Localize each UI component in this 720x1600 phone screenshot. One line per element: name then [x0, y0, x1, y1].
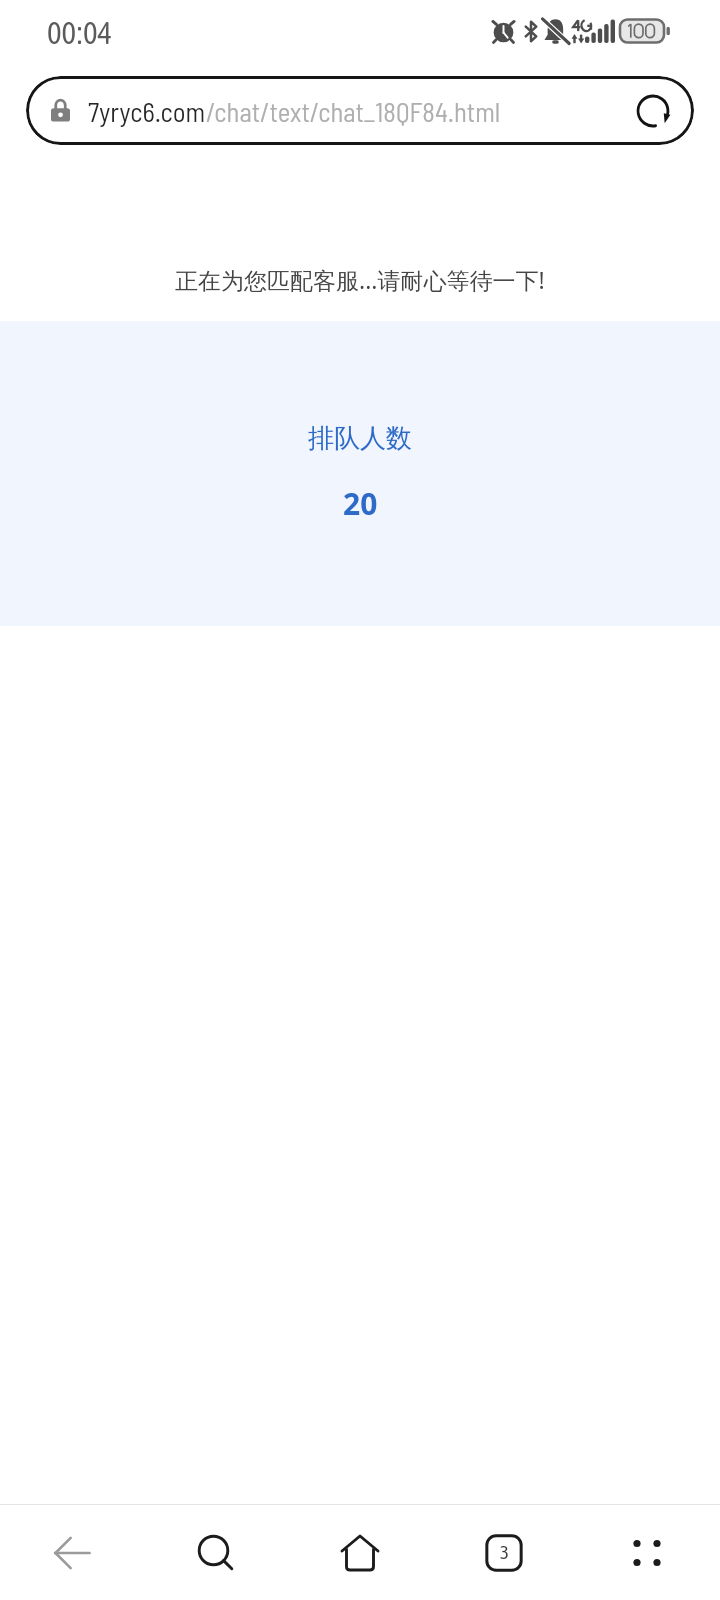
- button[interactable]: Search: [166, 1506, 262, 1600]
- staticText: 正在为您匹配客服...请耐心等待一下!: [175, 264, 545, 295]
- button[interactable]: Menu: [599, 1506, 695, 1600]
- staticText: 排队人数: [308, 422, 412, 455]
- staticText: /chat/text/chat_18QF84.html: [206, 95, 501, 127]
- button[interactable]: 7yryc6.com: [26, 76, 694, 145]
- staticText: 20: [343, 483, 378, 524]
- button[interactable]: Reload page: [631, 89, 675, 133]
- button[interactable]: Back: [24, 1506, 120, 1600]
- staticText: 00:04: [47, 15, 113, 51]
- button[interactable]: Tabs, 3 open: [456, 1506, 552, 1600]
- staticText: 7yryc6.com: [88, 95, 206, 127]
- button[interactable]: Home: [312, 1506, 408, 1600]
- staticText: 3: [500, 1541, 509, 1563]
